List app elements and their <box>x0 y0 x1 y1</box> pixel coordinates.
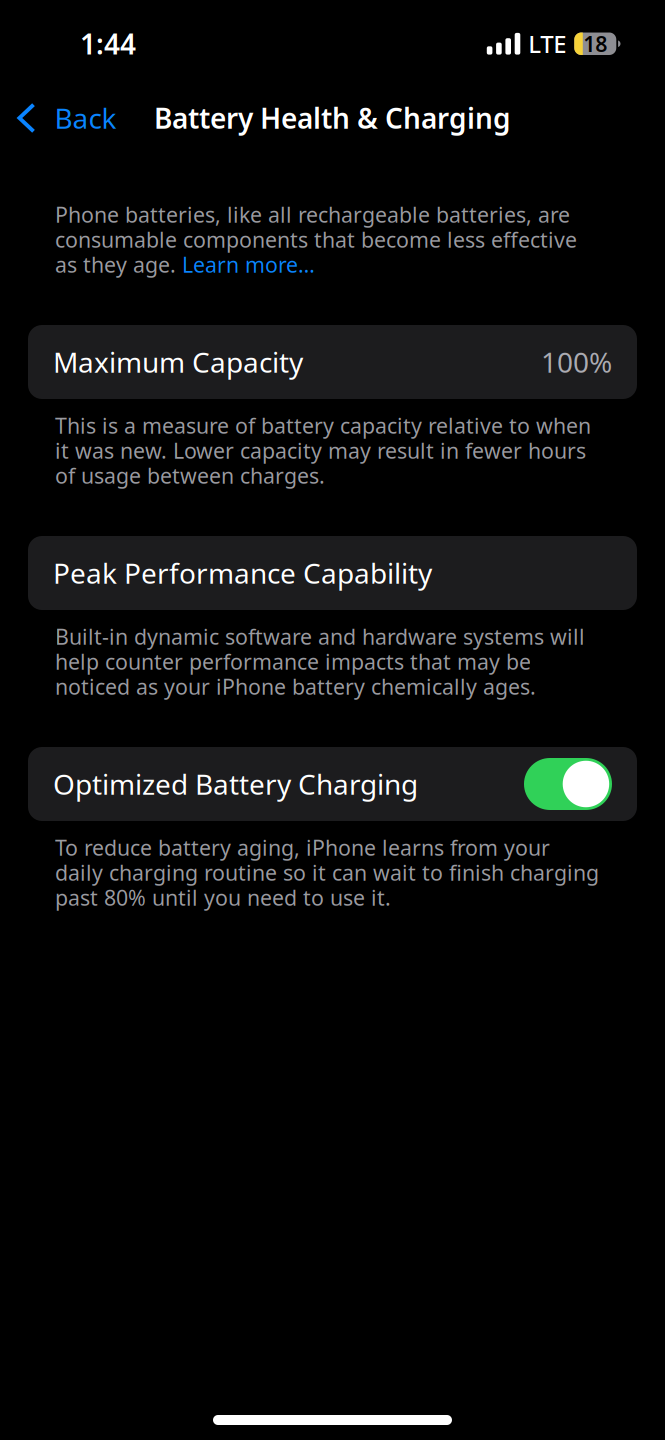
staticText: 18 <box>583 30 607 58</box>
staticText: LTE <box>528 28 566 60</box>
staticText: help counter performance impacts that ma… <box>55 647 531 676</box>
staticText: it was new. Lower capacity may result in… <box>55 436 586 465</box>
staticText: as they age. <box>55 250 182 279</box>
staticText: consumable components that become less e… <box>55 225 577 254</box>
staticText: daily charging routine so it can wait to… <box>55 858 599 887</box>
staticText: Optimized Battery Charging <box>53 765 418 803</box>
staticText: Phone batteries, like all rechargeable b… <box>55 200 570 229</box>
staticText: 1:44 <box>80 25 136 62</box>
button[interactable]: Maximum Capacity <box>28 325 637 399</box>
staticText: This is a measure of battery capacity re… <box>55 411 591 440</box>
staticText: past 80% until you need to use it. <box>55 883 391 912</box>
staticText: Peak Performance Capability <box>53 554 432 592</box>
staticText: Battery Health & Charging <box>154 99 511 137</box>
staticText: Built-in dynamic software and hardware s… <box>55 622 585 651</box>
staticText: 100% <box>541 343 612 381</box>
staticText: Learn more… <box>182 250 315 279</box>
button[interactable]: Back <box>0 96 132 140</box>
button[interactable]: Optimized Battery Charging, on <box>524 758 612 810</box>
staticText: Back <box>54 99 116 137</box>
button[interactable]: Peak Performance Capability <box>28 536 637 610</box>
staticText: of usage between charges. <box>55 461 325 490</box>
staticText: To reduce battery aging, iPhone learns f… <box>55 833 550 862</box>
staticText: noticed as your iPhone battery chemicall… <box>55 672 536 701</box>
staticText: Maximum Capacity <box>53 343 303 381</box>
button[interactable]: Learn more… <box>182 250 315 279</box>
